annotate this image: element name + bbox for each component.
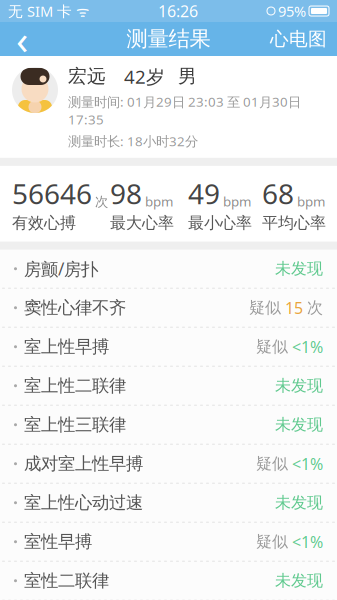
button[interactable]: 室上性早搏 — [0, 328, 337, 367]
staticText: 室上性心动过速 — [24, 492, 143, 513]
staticText: 室上性早搏 — [24, 336, 109, 357]
staticText: 未发现 — [275, 415, 323, 435]
staticText: 56646 — [12, 175, 92, 212]
staticText: 成对室上性早搏 — [24, 453, 143, 474]
staticText: bpm — [223, 192, 251, 210]
staticText: 次 — [95, 194, 108, 210]
staticText: bpm — [145, 192, 173, 210]
staticText: 未发现 — [275, 259, 323, 279]
staticText: 测量时间: 01月29日 23:03 至 01月30日 17:35 — [68, 93, 301, 128]
button[interactable]: 心电图 — [260, 22, 337, 56]
staticText: 42岁 — [124, 64, 165, 89]
staticText: 测量时长: 18小时32分 — [68, 132, 198, 150]
staticText: 测量结果 — [126, 26, 210, 52]
staticText: 98 — [110, 175, 142, 212]
staticText: 疑似 — [249, 298, 281, 318]
staticText: 最小心率 — [188, 213, 252, 233]
staticText: <1% — [292, 531, 323, 552]
staticText: 次 — [307, 298, 323, 318]
staticText: 16:26 — [158, 0, 198, 22]
staticText: ‹ — [16, 12, 28, 65]
staticText: 窦性心律不齐 — [24, 297, 126, 318]
staticText: 未发现 — [275, 571, 323, 591]
staticText: 15 — [285, 297, 303, 318]
staticText: 最大心率 — [110, 213, 174, 233]
staticText: ᯤ — [72, 1, 89, 21]
staticText: 室性早搏 — [24, 531, 92, 552]
staticText: 平均心率 — [262, 213, 326, 233]
staticText: bpm — [297, 192, 325, 210]
staticText: 室上性二联律 — [24, 375, 126, 396]
button[interactable]: 房颤/房扑 — [0, 250, 337, 289]
button[interactable]: 窦性心律不齐 — [0, 289, 337, 328]
button[interactable]: 室性早搏 — [0, 523, 337, 562]
staticText: 室上性三联律 — [24, 414, 126, 435]
staticText: 宏远 — [68, 65, 106, 88]
button[interactable]: 返回 — [0, 22, 44, 56]
button[interactable]: 室上性心动过速 — [0, 484, 337, 523]
staticText: 疑似 — [256, 532, 288, 552]
staticText: 疑似 — [256, 454, 288, 474]
button[interactable]: 室上性二联律 — [0, 367, 337, 406]
staticText: 心电图 — [270, 27, 327, 50]
staticText: 房颤/房扑 — [24, 257, 98, 280]
button[interactable]: 室性二联律 — [0, 562, 337, 600]
staticText: 有效心搏 — [12, 213, 76, 233]
staticText: 疑似 — [256, 337, 288, 357]
staticText: 95% — [278, 1, 306, 21]
staticText: 未发现 — [275, 376, 323, 396]
staticText: 68 — [262, 175, 294, 212]
button[interactable]: 成对室上性早搏 — [0, 445, 337, 484]
staticText: 49 — [188, 175, 220, 212]
staticText: <1% — [292, 336, 323, 357]
staticText: 未发现 — [275, 493, 323, 513]
button[interactable]: 室上性三联律 — [0, 406, 337, 445]
staticText: 男 — [178, 65, 197, 88]
staticText: <1% — [292, 453, 323, 474]
staticText: 无 SIM 卡 — [8, 1, 72, 21]
staticText: 室性二联律 — [24, 570, 109, 591]
